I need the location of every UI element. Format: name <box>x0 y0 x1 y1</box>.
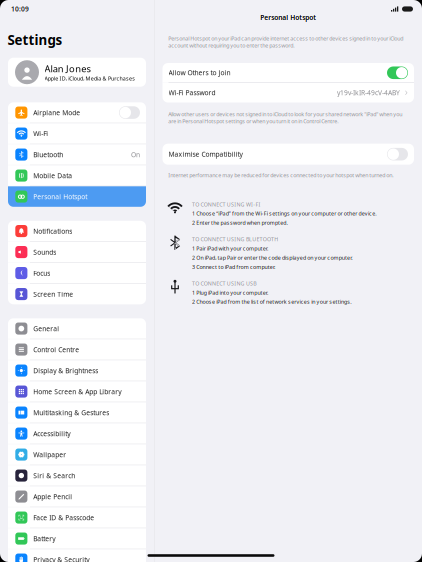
staticText: TO CONNECT USING WI-FI <box>192 201 261 208</box>
staticText: 3 Connect to iPad from computer. <box>192 263 275 270</box>
staticText: TO CONNECT USING BLUETOOTH <box>192 236 278 243</box>
staticText: TO CONNECT USING USB <box>192 280 256 287</box>
staticText: 1 Plug iPad into your computer. <box>192 289 268 296</box>
staticText: 1 Pair iPad with your computer. <box>192 245 268 252</box>
staticText: 2 Enter the password when prompted. <box>192 219 287 226</box>
button[interactable]: Control Centre <box>8 339 146 360</box>
staticText: Settings <box>7 31 62 49</box>
button[interactable]: Wi-Fi <box>8 123 146 144</box>
button[interactable]: Wi-Fi Password <box>162 83 414 102</box>
staticText: Display & Brightness <box>33 366 98 375</box>
button[interactable]: Siri & Search <box>8 465 146 486</box>
staticText: 2 On iPad, tap Pair or enter the code di… <box>192 254 352 261</box>
button[interactable]: Privacy & Security <box>8 549 146 562</box>
staticText: 1 Choose “iPad” from the Wi-Fi settings … <box>192 210 376 217</box>
button[interactable]: Bluetooth <box>8 144 146 165</box>
button[interactable]: Mobile Data <box>8 165 146 186</box>
staticText: Accessibility <box>33 429 70 438</box>
staticText: Airplane Mode <box>33 108 80 117</box>
staticText: Allow other users or devices not signed … <box>168 110 402 125</box>
button[interactable]: Allow Others to Join <box>162 63 414 82</box>
button[interactable]: Notifications <box>8 221 146 241</box>
staticText: Wallpaper <box>33 450 66 459</box>
button[interactable]: Focus <box>8 263 146 283</box>
staticText: Mobile Data <box>33 171 72 180</box>
staticText: General <box>33 324 59 333</box>
button[interactable]: Alan Jones <box>0 58 154 87</box>
button[interactable]: Sounds <box>8 242 146 262</box>
staticText: Wi-Fi Password <box>168 88 215 97</box>
button[interactable]: Home Screen & App Library <box>8 381 146 402</box>
staticText: Screen Time <box>33 290 73 298</box>
staticText: Notifications <box>33 227 72 235</box>
staticText: 10:09 <box>11 5 29 13</box>
staticText: Sounds <box>33 248 56 256</box>
staticText: Face ID & Passcode <box>33 513 94 522</box>
staticText: Personal Hotspot <box>33 192 87 201</box>
staticText: Apple ID, iCloud, Media & Purchases <box>44 75 135 82</box>
button[interactable]: Battery <box>8 528 146 549</box>
button[interactable]: Multitasking & Gestures <box>8 402 146 423</box>
button[interactable]: Face ID & Passcode <box>8 507 146 528</box>
button[interactable]: Accessibility <box>8 423 146 444</box>
staticText: Multitasking & Gestures <box>33 408 109 417</box>
staticText: Focus <box>33 269 50 277</box>
staticText: Bluetooth <box>33 150 63 159</box>
staticText: y19v-IkIR-49cV-4ABY <box>337 88 400 97</box>
staticText: Control Centre <box>33 345 79 354</box>
staticText: On <box>131 150 140 159</box>
staticText: 2 Choose iPad from the list of network s… <box>192 298 351 305</box>
staticText: Wi-Fi <box>33 129 48 138</box>
staticText: Personal Hotspot <box>260 13 316 22</box>
staticText: Alan Jones <box>44 62 90 75</box>
staticText: Maximise Compatibility <box>168 150 242 159</box>
staticText: Siri & Search <box>33 471 75 480</box>
button[interactable]: Maximise Compatibility <box>154 144 422 165</box>
staticText: Personal Hotspot on your iPad can provid… <box>168 35 403 49</box>
button[interactable]: Wallpaper <box>8 444 146 465</box>
staticText: Apple Pencil <box>33 492 72 501</box>
staticText: Allow Others to Join <box>168 68 230 77</box>
staticText: Battery <box>33 534 55 543</box>
button[interactable]: Airplane Mode <box>8 102 146 123</box>
staticText: Internet performance may be reduced for … <box>168 172 393 179</box>
button[interactable]: General <box>8 318 146 339</box>
staticText: Home Screen & App Library <box>33 387 121 396</box>
button[interactable]: Screen Time <box>8 284 146 304</box>
button[interactable]: Apple Pencil <box>8 486 146 507</box>
staticText: Privacy & Security <box>33 555 89 562</box>
button[interactable]: Personal Hotspot <box>8 186 146 207</box>
button[interactable]: Display & Brightness <box>8 360 146 381</box>
